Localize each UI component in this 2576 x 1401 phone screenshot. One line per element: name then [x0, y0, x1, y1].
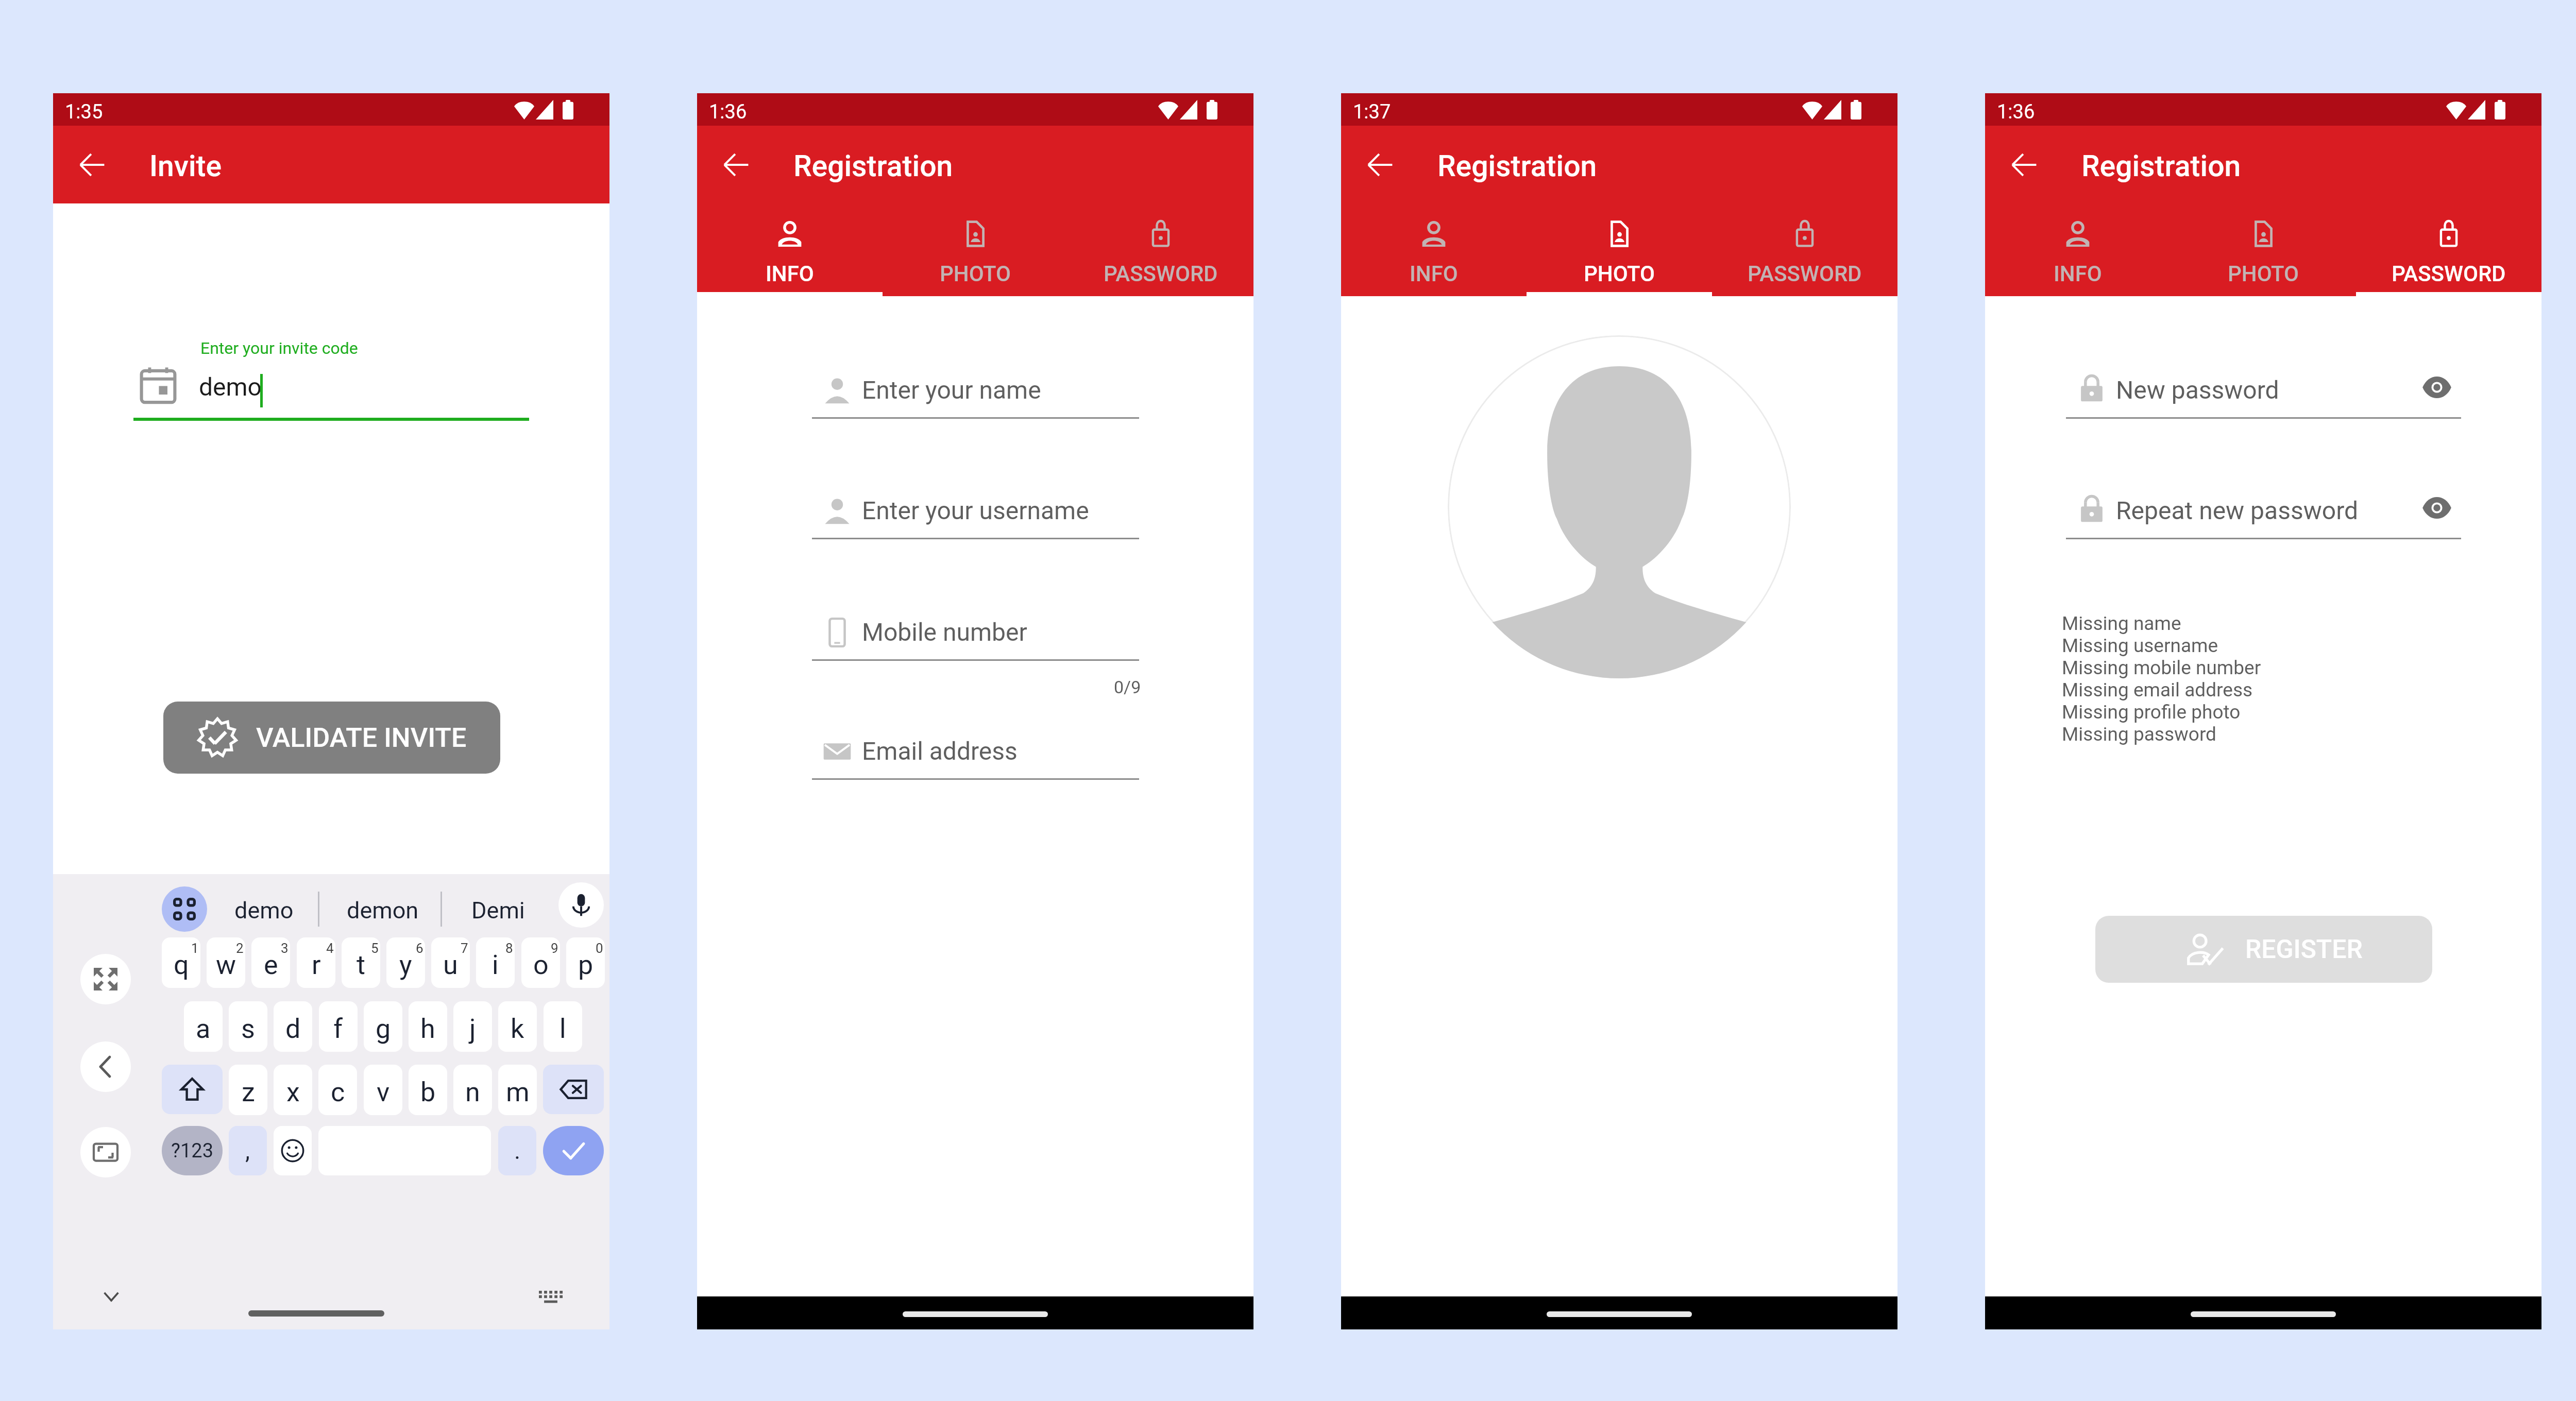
- staticText: Enter your username: [862, 496, 1089, 525]
- button[interactable]: demo: [234, 897, 294, 924]
- staticText: u: [443, 949, 458, 981]
- button[interactable]: Enter your name: [812, 366, 1139, 419]
- button[interactable]: Enter: [543, 1126, 604, 1175]
- button[interactable]: c: [318, 1065, 357, 1115]
- button[interactable]: z: [229, 1065, 267, 1115]
- button[interactable]: g: [364, 1001, 402, 1052]
- button[interactable]: w: [207, 937, 245, 988]
- button[interactable]: demon: [347, 897, 419, 924]
- staticText: Registration: [2081, 149, 2241, 183]
- button[interactable]: Keyboard apps: [162, 886, 207, 932]
- button[interactable]: PHOTO: [2171, 203, 2356, 296]
- button[interactable]: Back: [1996, 136, 2053, 193]
- button[interactable]: Repeat new password: [2066, 486, 2461, 539]
- staticText: o: [533, 949, 549, 981]
- button[interactable]: d: [274, 1001, 312, 1052]
- button[interactable]: o: [521, 937, 560, 988]
- button[interactable]: Shift: [162, 1065, 223, 1114]
- button[interactable]: VALIDATE INVITE: [163, 702, 500, 774]
- button[interactable]: PASSWORD: [2356, 203, 2541, 296]
- button[interactable]: r: [297, 937, 335, 988]
- button[interactable]: p: [566, 937, 605, 988]
- staticText: y: [399, 949, 412, 981]
- button[interactable]: Show password: [2416, 487, 2458, 528]
- staticText: 3: [281, 941, 289, 956]
- button[interactable]: Demi: [471, 897, 525, 924]
- button[interactable]: New password: [2066, 366, 2461, 419]
- button[interactable]: s: [229, 1001, 267, 1052]
- button[interactable]: q: [162, 937, 200, 988]
- staticText: 0: [596, 941, 603, 956]
- button[interactable]: Hide keyboard: [104, 1292, 118, 1302]
- staticText: Missing username: [2062, 635, 2218, 657]
- staticText: 1:37: [1353, 100, 1391, 124]
- button[interactable]: Back: [64, 136, 121, 193]
- button[interactable]: Enter your username: [812, 486, 1139, 539]
- staticText: 1: [191, 941, 199, 956]
- staticText: INFO: [1410, 261, 1458, 286]
- button[interactable]: Resize keyboard: [80, 954, 131, 1004]
- button[interactable]: INFO: [1341, 203, 1527, 296]
- button[interactable]: Back: [708, 136, 765, 193]
- staticText: h: [420, 1013, 435, 1045]
- button[interactable]: t: [342, 937, 380, 988]
- button[interactable]: Back: [1352, 136, 1409, 193]
- button[interactable]: n: [453, 1065, 492, 1115]
- button[interactable]: j: [453, 1001, 492, 1052]
- button[interactable]: m: [498, 1065, 537, 1115]
- button[interactable]: y: [386, 937, 425, 988]
- button[interactable]: ,: [229, 1126, 267, 1175]
- button[interactable]: u: [431, 937, 470, 988]
- button[interactable]: PASSWORD: [1712, 203, 1897, 296]
- button[interactable]: e: [251, 937, 290, 988]
- button[interactable]: One handed mode: [80, 1127, 131, 1177]
- button[interactable]: b: [409, 1065, 447, 1115]
- button[interactable]: INFO: [697, 203, 883, 296]
- button[interactable]: Backspace: [543, 1065, 604, 1114]
- staticText: s: [241, 1013, 255, 1045]
- staticText: v: [377, 1077, 390, 1108]
- button[interactable]: REGISTER: [2095, 916, 2432, 983]
- staticText: c: [331, 1077, 345, 1108]
- staticText: 7: [461, 941, 468, 956]
- staticText: l: [560, 1013, 566, 1045]
- button[interactable]: INFO: [1985, 203, 2171, 296]
- button[interactable]: PHOTO: [883, 203, 1068, 296]
- button[interactable]: Mobile number: [812, 608, 1139, 661]
- button[interactable]: Profile photo: [1448, 335, 1791, 678]
- staticText: a: [196, 1013, 211, 1045]
- button[interactable]: l: [544, 1001, 582, 1052]
- button[interactable]: v: [364, 1065, 402, 1115]
- button[interactable]: Switch keyboard: [539, 1291, 563, 1303]
- button[interactable]: i: [476, 937, 515, 988]
- staticText: w: [216, 949, 236, 981]
- button[interactable]: Emoji: [274, 1126, 312, 1175]
- button[interactable]: Previous: [80, 1041, 131, 1092]
- staticText: q: [174, 949, 189, 981]
- button[interactable]: x: [274, 1065, 312, 1115]
- button[interactable]: Voice input: [558, 882, 604, 928]
- staticText: n: [465, 1077, 480, 1108]
- staticText: Email address: [862, 737, 1018, 765]
- button[interactable]: ?123: [162, 1126, 223, 1175]
- button[interactable]: .: [498, 1126, 536, 1175]
- staticText: e: [264, 949, 278, 981]
- staticText: ?123: [171, 1139, 214, 1163]
- staticText: 6: [416, 941, 423, 956]
- button[interactable]: a: [184, 1001, 223, 1052]
- staticText: VALIDATE INVITE: [256, 722, 467, 754]
- staticText: b: [420, 1077, 436, 1108]
- staticText: 5: [371, 941, 379, 956]
- staticText: 1:35: [65, 100, 103, 124]
- staticText: INFO: [2054, 261, 2102, 286]
- button[interactable]: PHOTO: [1527, 203, 1712, 296]
- button[interactable]: f: [319, 1001, 358, 1052]
- button[interactable]: h: [409, 1001, 447, 1052]
- button[interactable]: Email address: [812, 727, 1139, 780]
- button[interactable]: PASSWORD: [1068, 203, 1253, 296]
- staticText: Enter your invite code: [200, 338, 358, 358]
- staticText: 8: [505, 941, 513, 956]
- button[interactable]: k: [498, 1001, 537, 1052]
- button[interactable]: Show password: [2416, 367, 2458, 408]
